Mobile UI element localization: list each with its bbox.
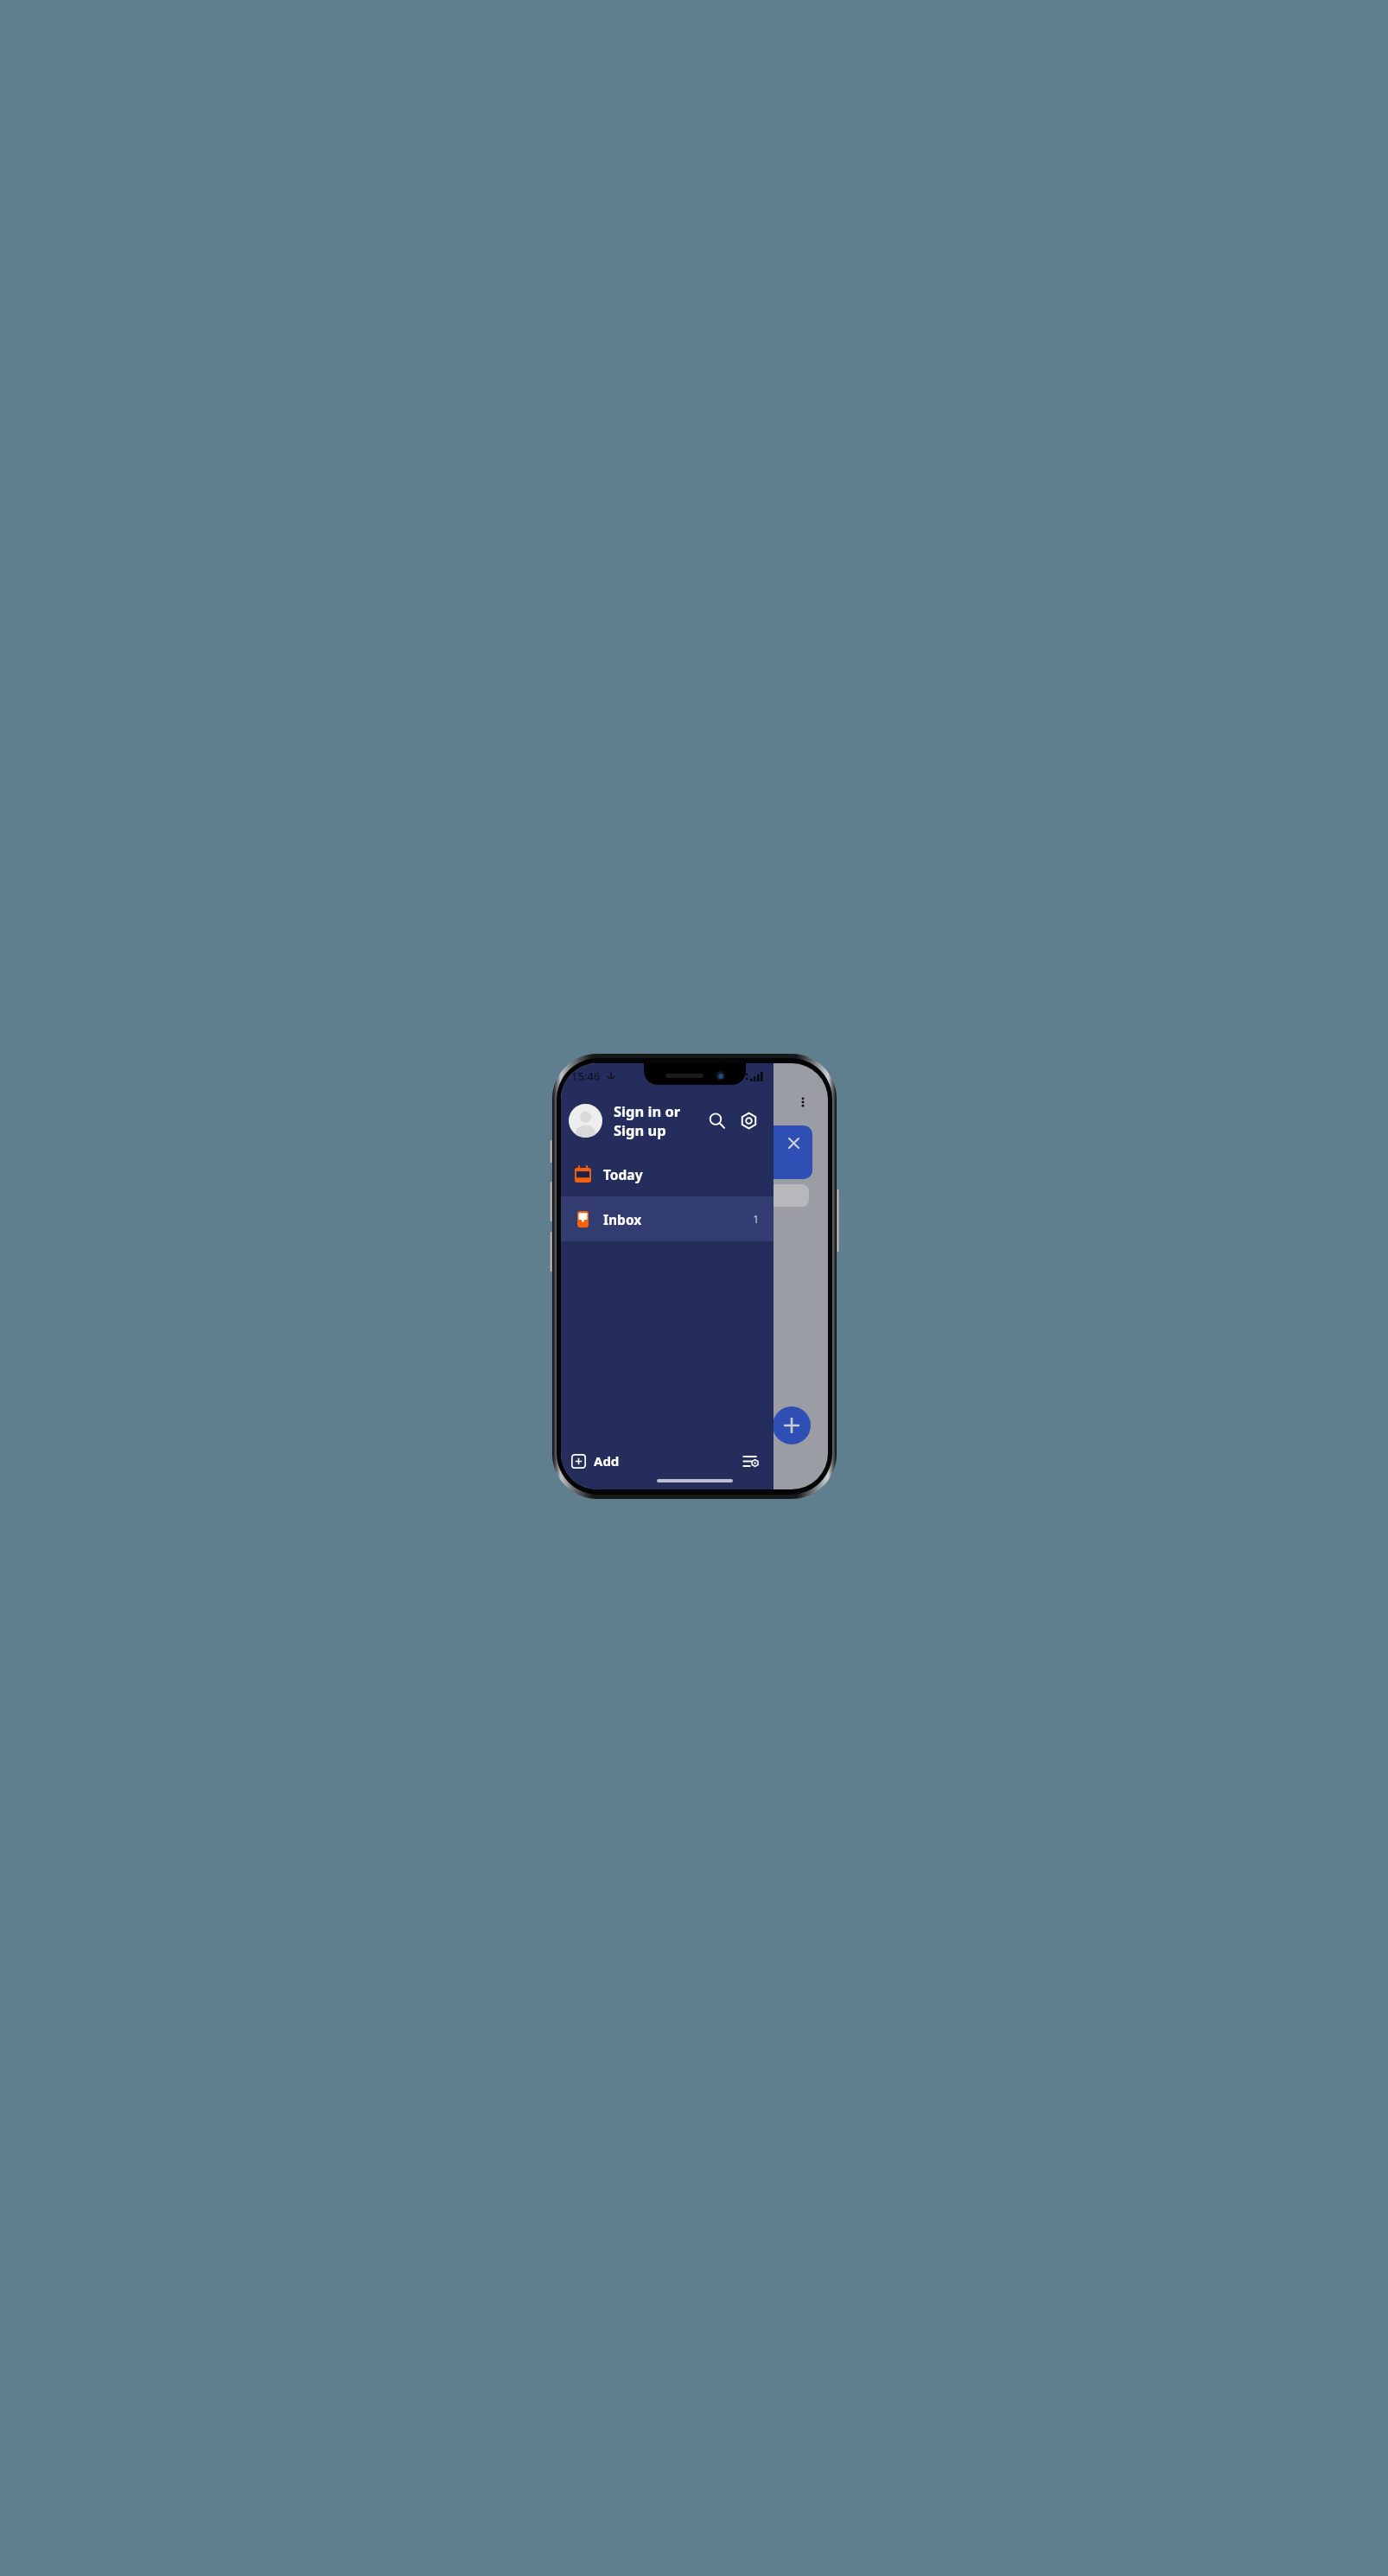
button[interactable]: More options [790, 1089, 816, 1115]
button[interactable]: Search [702, 1106, 731, 1135]
staticText: G [736, 1070, 744, 1083]
button[interactable]: Close [566, 1125, 812, 1179]
staticText: 15:46 [571, 1068, 601, 1084]
button[interactable]: Sign in or Sign up [614, 1101, 702, 1139]
staticText: Today [603, 1165, 643, 1183]
staticText: 1 [753, 1211, 760, 1227]
staticText: Inbox [603, 1210, 642, 1228]
button[interactable]: Today [561, 1151, 774, 1196]
button[interactable]: Manage projects [737, 1448, 763, 1474]
staticText: Add [594, 1452, 620, 1470]
button[interactable]: Account [569, 1104, 602, 1138]
button[interactable]: Inbox [561, 1196, 774, 1241]
button[interactable]: Add task [773, 1406, 811, 1444]
button[interactable]: Settings [734, 1106, 763, 1135]
other: Close [785, 1134, 802, 1151]
button[interactable]: Add [571, 1452, 620, 1470]
